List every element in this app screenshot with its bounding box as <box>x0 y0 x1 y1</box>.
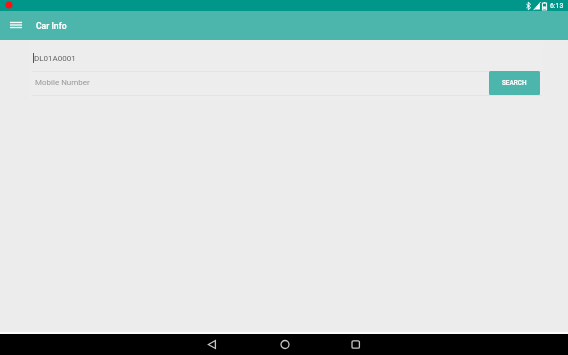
button[interactable]: SEARCH <box>489 71 540 95</box>
staticText: DL01A0001 <box>34 54 76 63</box>
staticText: 6:13 <box>550 2 564 10</box>
staticText: Car Info <box>36 21 67 31</box>
button[interactable]: DL01A0001 <box>31 48 542 72</box>
button[interactable]: Back <box>202 334 223 355</box>
button[interactable]: Home <box>275 334 296 355</box>
staticText: SEARCH <box>502 79 527 87</box>
button[interactable]: Menu <box>5 14 27 36</box>
button[interactable]: Mobile Number <box>31 72 542 96</box>
staticText: Mobile Number <box>35 78 90 87</box>
button[interactable]: Recent apps <box>345 334 366 355</box>
